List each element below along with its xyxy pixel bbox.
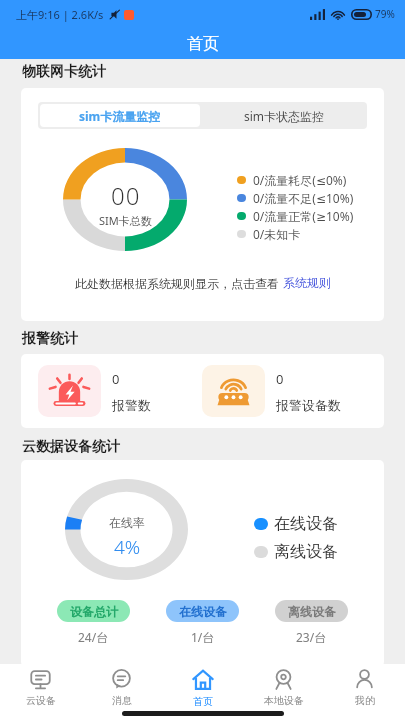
staticText: 首页 <box>193 695 213 706</box>
button[interactable]: sim卡流量监控 <box>40 104 200 127</box>
button[interactable]: 设备总计 <box>57 600 130 645</box>
staticText: 报警统计 <box>22 330 78 348</box>
staticText: 4% <box>114 534 141 560</box>
button[interactable]: 0/流量不足(≤10%) <box>237 189 354 207</box>
staticText: 报警数 <box>112 397 151 413</box>
staticText: 在线设备 <box>179 604 227 619</box>
staticText: 00 <box>111 179 141 212</box>
staticText: 设备总计 <box>70 604 118 619</box>
button[interactable]: 首页 <box>162 669 243 706</box>
staticText: 我的 <box>355 694 375 706</box>
button[interactable]: 在线设备 <box>166 600 239 645</box>
button[interactable]: 系统规则 <box>283 275 331 290</box>
button[interactable]: 0/流量正常(≥10%) <box>237 207 354 225</box>
staticText: 报警设备数 <box>276 397 341 413</box>
button[interactable]: sim卡状态监控 <box>202 102 367 129</box>
staticText: 0 <box>276 370 284 388</box>
staticText: 0/未知卡 <box>253 226 301 242</box>
button[interactable]: 报警设备数 <box>202 354 384 428</box>
staticText: 物联网卡统计 <box>22 63 106 81</box>
staticText: 云设备 <box>26 694 56 706</box>
button[interactable]: 云设备 <box>0 669 81 706</box>
staticText: 在线率 <box>109 515 145 530</box>
staticText: sim卡状态监控 <box>244 108 325 124</box>
staticText: sim卡流量监控 <box>79 108 161 124</box>
staticText: 首页 <box>187 34 219 54</box>
staticText: 离线设备 <box>274 542 338 562</box>
staticText: 24/台 <box>78 629 109 645</box>
staticText: 1/台 <box>191 629 215 645</box>
button[interactable]: 0/流量耗尽(≤0%) <box>237 171 347 189</box>
button[interactable]: 消息 <box>81 669 162 706</box>
other: 报警设备数 <box>213 374 254 408</box>
staticText: 0/流量正常(≥10%) <box>253 208 354 224</box>
staticText: 79% <box>375 7 395 21</box>
staticText: SIM卡总数 <box>99 213 152 228</box>
staticText: 此处数据根据系统规则显示，点击查看 <box>75 275 283 291</box>
staticText: 离线设备 <box>288 604 336 619</box>
staticText: 消息 <box>112 694 132 706</box>
staticText: 0/流量不足(≤10%) <box>253 190 354 206</box>
button[interactable]: 离线设备 <box>275 600 348 645</box>
button[interactable]: 报警数 <box>38 354 202 428</box>
button[interactable]: 离线设备 <box>254 542 338 562</box>
staticText: 云数据设备统计 <box>22 438 120 456</box>
button[interactable]: 本地设备 <box>243 669 324 706</box>
button[interactable]: 0/未知卡 <box>237 225 301 243</box>
button[interactable]: 我的 <box>324 669 405 706</box>
staticText: 0/流量耗尽(≤0%) <box>253 172 347 188</box>
staticText: 上午9:16 | 2.6K/s <box>16 7 104 22</box>
other: 报警数 <box>49 374 90 408</box>
button[interactable]: 在线设备 <box>254 514 338 534</box>
staticText: 23/台 <box>296 629 327 645</box>
staticText: 在线设备 <box>274 514 338 534</box>
staticText: 本地设备 <box>264 694 304 706</box>
staticText: 0 <box>112 370 120 388</box>
